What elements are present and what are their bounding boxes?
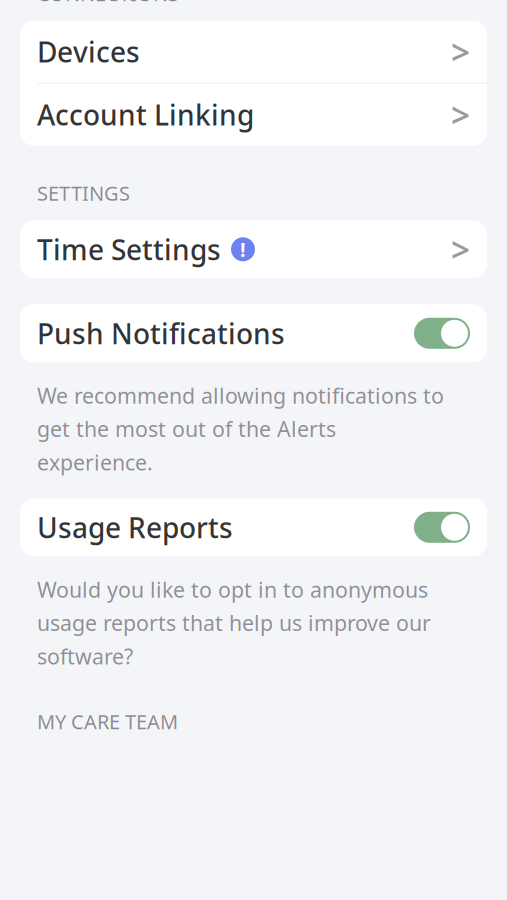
staticText: > xyxy=(451,227,470,271)
staticText: ! xyxy=(240,236,246,263)
staticText: CONNECTIONS xyxy=(37,0,179,7)
staticText: MY CARE TEAM xyxy=(37,708,178,735)
staticText: Push Notifications xyxy=(37,315,285,352)
button[interactable]: Account Linking xyxy=(20,84,487,146)
staticText: Would you like to opt in to anonymous us… xyxy=(37,575,431,670)
staticText: SETTINGS xyxy=(37,180,130,206)
button[interactable]: Devices xyxy=(20,21,487,83)
button[interactable]: Usage Reports xyxy=(20,498,487,556)
staticText: Usage Reports xyxy=(37,509,233,546)
staticText: Account Linking xyxy=(37,96,254,133)
button[interactable]: Push Notifications xyxy=(20,304,487,362)
staticText: > xyxy=(451,93,470,137)
button[interactable]: Time Settings xyxy=(20,220,487,278)
staticText: We recommend allowing notifications to g… xyxy=(37,381,444,476)
staticText: > xyxy=(451,30,470,74)
staticText: Time Settings xyxy=(37,231,221,268)
staticText: Devices xyxy=(37,33,140,70)
